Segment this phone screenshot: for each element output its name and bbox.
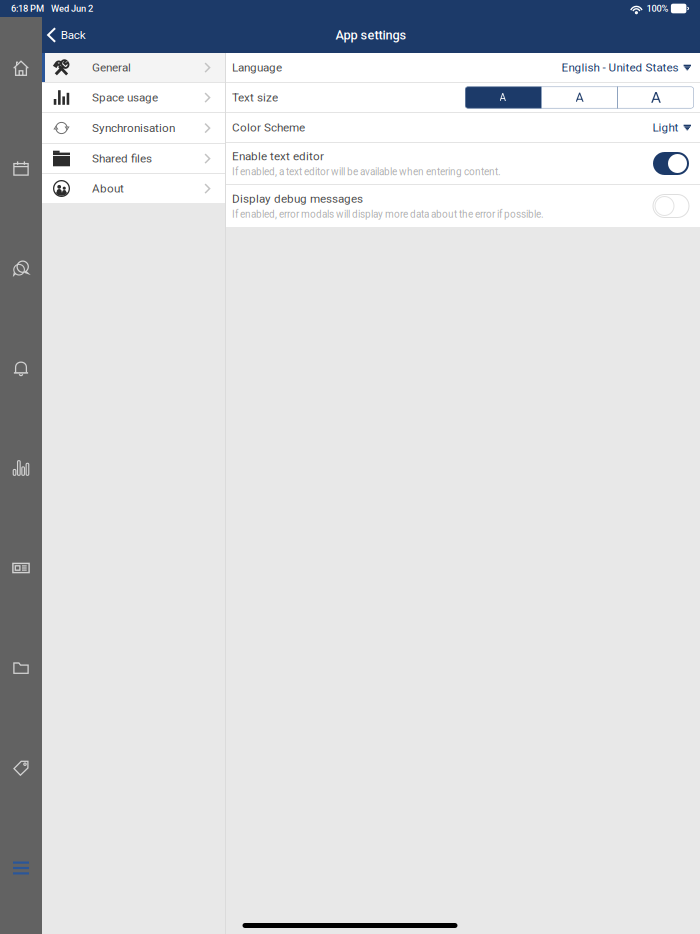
button[interactable]: Back	[42, 17, 94, 53]
staticText: Display debug messages	[232, 192, 363, 205]
button[interactable]: Files	[0, 646, 42, 690]
staticText: About	[92, 182, 124, 195]
button[interactable]: Synchronisation	[42, 113, 225, 143]
staticText: Space usage	[92, 91, 158, 104]
button[interactable]: A	[542, 86, 617, 108]
button[interactable]: Language	[226, 53, 700, 82]
button[interactable]: Calendar	[0, 146, 42, 190]
staticText: App settings	[335, 27, 406, 42]
staticText: English - United States	[562, 61, 679, 74]
button[interactable]: News	[0, 546, 42, 590]
staticText: Wed Jun 2	[51, 3, 93, 14]
staticText: Color Scheme	[232, 121, 305, 134]
button[interactable]: General	[42, 53, 225, 82]
button[interactable]: Display debug messages	[226, 185, 700, 227]
button[interactable]: A	[465, 86, 541, 108]
staticText: Enable text editor	[232, 149, 324, 163]
staticText: Light	[653, 121, 679, 134]
staticText: Shared files	[92, 152, 152, 165]
staticText: 6:18 PM	[11, 3, 44, 14]
staticText: Language	[232, 61, 282, 74]
staticText: A	[575, 90, 583, 105]
button[interactable]: Shared files	[42, 144, 225, 173]
button[interactable]: Statistics	[0, 446, 42, 490]
staticText: 100%	[646, 3, 668, 14]
staticText: General	[92, 61, 131, 74]
staticText: Synchronisation	[92, 121, 175, 135]
button[interactable]: Messages	[0, 246, 42, 290]
button[interactable]: Enable text editor	[226, 143, 700, 184]
button[interactable]: Menu	[0, 846, 42, 890]
staticText: Back	[61, 28, 86, 42]
button[interactable]: Home	[0, 46, 42, 90]
button[interactable]: Notifications	[0, 346, 42, 390]
button[interactable]: Color Scheme	[226, 113, 700, 142]
staticText: If enabled, error modals will display mo…	[232, 208, 544, 220]
button[interactable]: Space usage	[42, 83, 225, 112]
button[interactable]: Tags	[0, 746, 42, 790]
button[interactable]: About	[42, 174, 225, 203]
staticText: Text size	[232, 91, 278, 104]
staticText: If enabled, a text editor will be availa…	[232, 166, 501, 178]
staticText: A	[651, 88, 661, 106]
staticText: A	[499, 92, 506, 103]
button[interactable]: A	[618, 86, 694, 108]
